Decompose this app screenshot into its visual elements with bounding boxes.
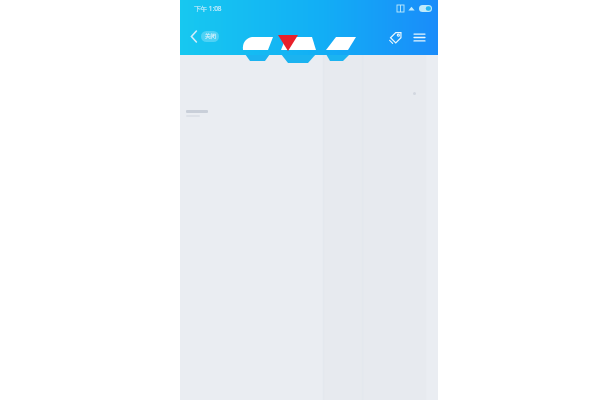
- button[interactable]: Back: [188, 28, 221, 45]
- staticText: 关闭: [205, 33, 216, 40]
- button[interactable]: Menu: [408, 26, 430, 48]
- staticText: 下午 1:08: [194, 4, 222, 13]
- button[interactable]: Coupons: [384, 26, 406, 48]
